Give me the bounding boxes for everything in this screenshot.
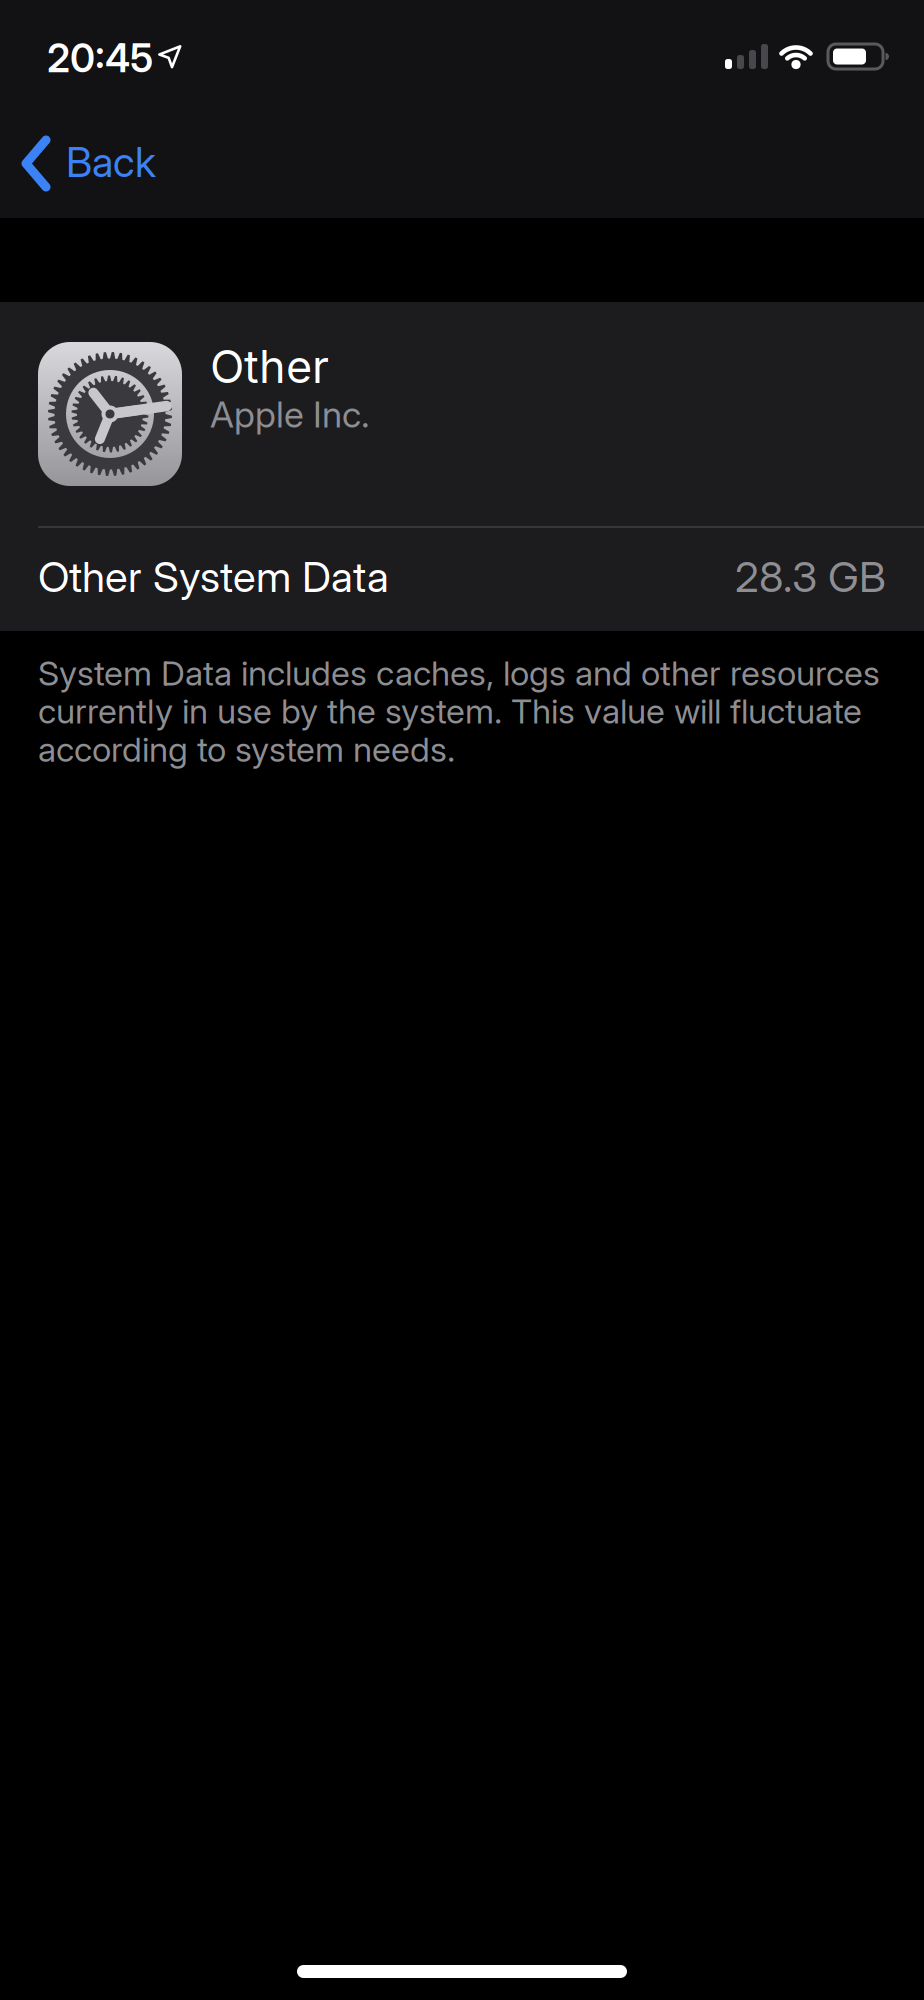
staticText: Back [66, 138, 156, 186]
staticText: 20:45 [47, 35, 153, 81]
staticText: currently in use by the system. This val… [38, 691, 862, 731]
staticText: according to system needs. [38, 729, 455, 769]
staticText: 28.3 GB [735, 552, 886, 601]
staticText: Other System Data [38, 552, 389, 601]
staticText: Apple Inc. [210, 393, 370, 436]
staticText: System Data includes caches, logs and ot… [38, 653, 880, 693]
staticText: Other [210, 340, 329, 393]
button[interactable]: Back [0, 0, 170, 218]
